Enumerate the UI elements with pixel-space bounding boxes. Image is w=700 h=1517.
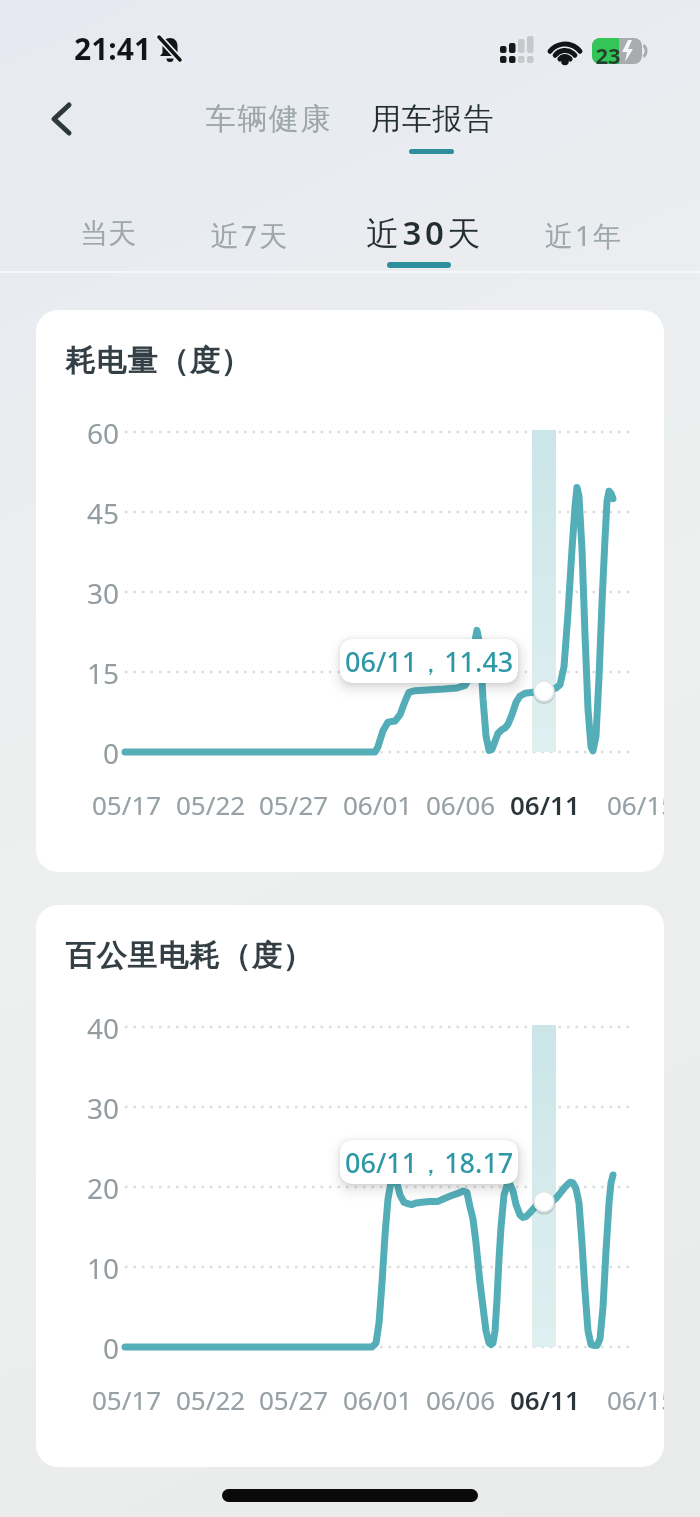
staticText: 05/22 [176, 787, 246, 822]
button[interactable]: 用车报告 [371, 100, 495, 138]
staticText: 05/22 [176, 1382, 246, 1417]
staticText: 10 [87, 1249, 120, 1285]
button[interactable]: 近7天 [211, 216, 290, 254]
staticText: 耗电量（度） [65, 342, 251, 380]
button[interactable]: 近1年 [545, 216, 624, 254]
staticText: 0 [103, 1329, 120, 1365]
staticText: 06/01 [343, 1382, 413, 1417]
staticText: 40 [87, 1009, 120, 1045]
button[interactable]: 当天 [80, 216, 136, 251]
staticText: 23 [593, 40, 623, 70]
staticText: 0 [103, 734, 120, 770]
button[interactable] [48, 101, 78, 137]
staticText: 06/11 [510, 1382, 580, 1417]
staticText: 21:41 [74, 28, 152, 69]
staticText: 05/17 [92, 787, 162, 822]
button[interactable]: 车辆健康 [205, 100, 331, 138]
staticText: 06/15 [607, 787, 664, 822]
staticText: 05/27 [259, 787, 329, 822]
staticText: 30 [87, 574, 120, 610]
staticText: 06/11，18.17 [345, 1144, 514, 1181]
staticText: 06/11 [510, 787, 580, 822]
staticText: 30 [87, 1089, 120, 1125]
staticText: 45 [87, 494, 120, 530]
staticText: 05/17 [92, 1382, 162, 1417]
staticText: 06/06 [426, 787, 496, 822]
staticText: 06/06 [426, 1382, 496, 1417]
staticText: 60 [87, 414, 120, 450]
button[interactable]: 近30天 [366, 210, 484, 255]
staticText: 15 [87, 654, 120, 690]
staticText: 06/01 [343, 787, 413, 822]
staticText: 06/15 [607, 1382, 664, 1417]
staticText: 05/27 [259, 1382, 329, 1417]
staticText: 百公里电耗（度） [65, 937, 313, 975]
staticText: 06/11，11.43 [345, 643, 514, 680]
staticText: 20 [87, 1169, 120, 1205]
